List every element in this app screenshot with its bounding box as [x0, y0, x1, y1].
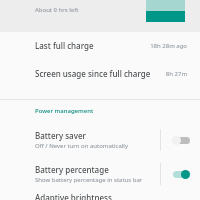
button[interactable]: Last full charge [0, 40, 200, 67]
button[interactable]: Battery percentage [0, 158, 200, 189]
staticText: Battery percentage [35, 164, 109, 175]
staticText: Last full charge [35, 40, 150, 51]
staticText: Battery saver [35, 130, 86, 141]
staticText: Power management [35, 107, 94, 115]
staticText: 18h 28m ago [150, 42, 187, 50]
staticText: Show battery percentage in status bar [35, 176, 143, 184]
button[interactable]: Battery saver [161, 124, 200, 155]
button[interactable]: Adaptive brightness [0, 192, 200, 200]
button[interactable]: Battery saver [0, 124, 200, 155]
staticText: Off / Never turn on automatically [35, 142, 128, 150]
staticText: Screen usage since full charge [35, 68, 165, 79]
button[interactable]: Battery percentage [161, 158, 200, 189]
button[interactable]: Screen usage since full charge [0, 68, 200, 95]
staticText: 8h 27m [165, 70, 187, 78]
staticText: Adaptive brightness [35, 192, 112, 200]
staticText: About 9 hrs left [35, 6, 79, 14]
